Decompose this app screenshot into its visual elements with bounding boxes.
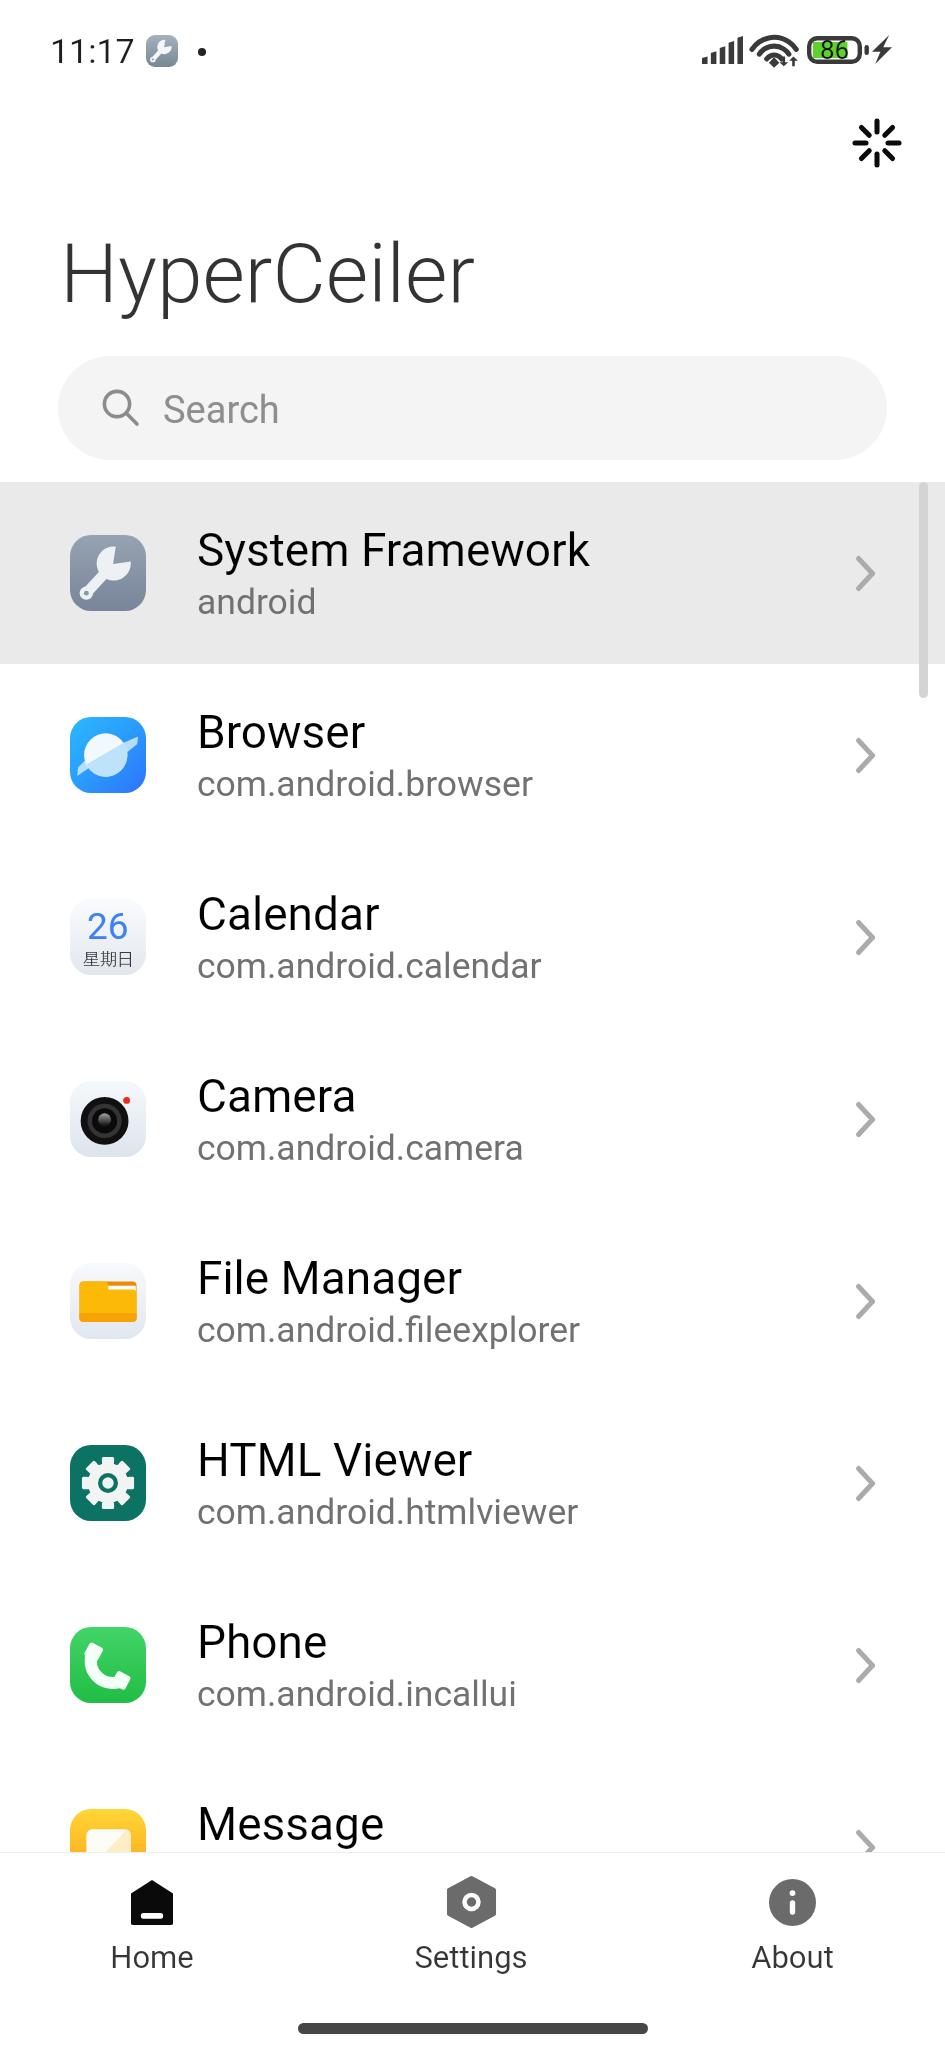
staticText: 星期日 bbox=[83, 949, 134, 970]
staticText: com.android.calendar bbox=[197, 945, 542, 987]
button[interactable]: File Manager bbox=[0, 1210, 945, 1392]
staticText: com.android.htmlviewer bbox=[197, 1491, 579, 1533]
staticText: HTML Viewer bbox=[197, 1433, 473, 1487]
staticText: Message bbox=[197, 1797, 385, 1851]
staticText: com.android.camera bbox=[197, 1127, 524, 1169]
staticText: Search bbox=[163, 388, 280, 433]
staticText: Camera bbox=[197, 1069, 357, 1123]
button[interactable]: Camera bbox=[0, 1028, 945, 1210]
button[interactable]: Search bbox=[58, 356, 887, 460]
button[interactable]: HTML Viewer bbox=[0, 1392, 945, 1574]
staticText: About bbox=[751, 1939, 834, 1975]
staticText: Home bbox=[110, 1939, 194, 1975]
button[interactable]: Home bbox=[52, 1853, 252, 2000]
staticText: 26 bbox=[87, 905, 129, 948]
button[interactable]: Message bbox=[0, 1756, 945, 1938]
button[interactable]: System Framework bbox=[0, 482, 945, 664]
staticText: com.android.mms bbox=[197, 1855, 486, 1897]
staticText: Phone bbox=[197, 1615, 328, 1669]
button[interactable]: 26 bbox=[0, 846, 945, 1028]
staticText: 86 bbox=[820, 35, 850, 63]
staticText: com.android.incallui bbox=[197, 1673, 517, 1715]
staticText: android bbox=[197, 581, 317, 623]
staticText: 11:17 bbox=[50, 31, 135, 71]
staticText: Calendar bbox=[197, 887, 380, 941]
staticText: com.android.browser bbox=[197, 763, 533, 805]
button[interactable]: Loading bbox=[838, 104, 916, 182]
button[interactable]: Settings bbox=[371, 1853, 571, 2000]
button[interactable]: About bbox=[692, 1853, 892, 2000]
button[interactable]: Browser bbox=[0, 664, 945, 846]
staticText: Browser bbox=[197, 705, 366, 759]
button[interactable]: Phone bbox=[0, 1574, 945, 1756]
staticText: System Framework bbox=[197, 523, 590, 577]
staticText: File Manager bbox=[197, 1251, 463, 1305]
staticText: HyperCeiler bbox=[60, 226, 476, 322]
staticText: com.android.fileexplorer bbox=[197, 1309, 581, 1351]
staticText: Settings bbox=[414, 1939, 528, 1975]
